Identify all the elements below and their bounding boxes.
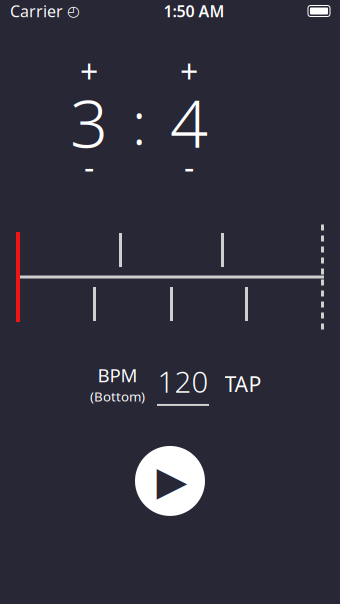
button[interactable]: + bbox=[58, 56, 120, 86]
staticText: : bbox=[132, 83, 146, 161]
staticText: - bbox=[184, 146, 194, 188]
staticText: ◴ bbox=[67, 3, 80, 19]
staticText: + bbox=[180, 50, 198, 92]
button[interactable]: + bbox=[158, 56, 220, 86]
staticText: + bbox=[80, 50, 98, 92]
staticText: TAP bbox=[224, 370, 261, 398]
button[interactable]: - bbox=[158, 154, 220, 180]
staticText: (Bottom) bbox=[90, 387, 145, 405]
staticText: 120 bbox=[157, 362, 208, 401]
staticText: - bbox=[84, 146, 94, 188]
button[interactable]: TAP bbox=[221, 367, 265, 401]
staticText: 4 bbox=[170, 78, 208, 166]
staticText: 3 bbox=[70, 78, 108, 166]
staticText: Carrier bbox=[10, 0, 63, 22]
staticText: 1:50 AM bbox=[163, 0, 224, 22]
staticText: BPM bbox=[97, 363, 137, 387]
button[interactable]: - bbox=[58, 154, 120, 180]
staticText: ▶ bbox=[156, 458, 187, 504]
button[interactable]: Play bbox=[135, 446, 205, 516]
